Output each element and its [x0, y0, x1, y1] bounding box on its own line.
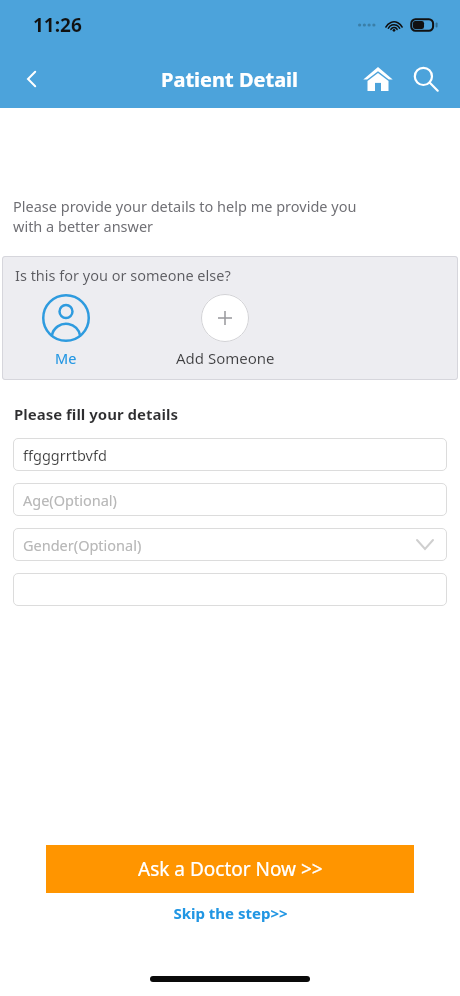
staticText: Please fill your details: [14, 404, 178, 424]
staticText: Age(Optional): [23, 490, 117, 510]
button[interactable]: Gender(Optional): [13, 528, 447, 561]
button[interactable]: Home: [354, 55, 402, 103]
button[interactable]: ffgggrrtbvfd: [13, 438, 447, 471]
button[interactable]: Search: [402, 55, 450, 103]
button[interactable]: [13, 573, 447, 606]
button[interactable]: Back: [8, 55, 56, 103]
staticText: Is this for you or someone else?: [15, 265, 231, 285]
staticText: Add Someone: [176, 348, 275, 368]
staticText: Skip the step>>: [173, 903, 288, 923]
button[interactable]: Me: [29, 294, 103, 368]
staticText: Patient Detail: [161, 66, 299, 93]
staticText: Gender(Optional): [23, 535, 142, 555]
staticText: 11:26: [33, 12, 82, 38]
staticText: ffgggrrtbvfd: [23, 445, 107, 465]
button[interactable]: Skip the step>>: [0, 903, 460, 923]
button[interactable]: Add Someone: [155, 294, 295, 368]
staticText: Me: [55, 348, 77, 368]
staticText: Ask a Doctor Now >>: [138, 856, 323, 882]
staticText: Please provide your details to help me p…: [13, 196, 380, 237]
button[interactable]: Ask a Doctor Now >>: [46, 845, 414, 893]
button[interactable]: Age(Optional): [13, 483, 447, 516]
